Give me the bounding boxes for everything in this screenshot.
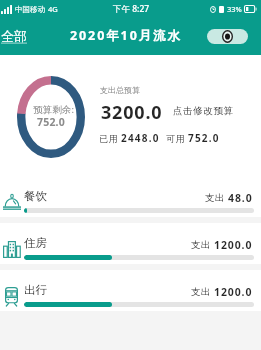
staticText: 支出 (205, 192, 225, 204)
button[interactable]: 显示金额开关 (207, 29, 248, 44)
staticText: 点击修改预算 (173, 105, 234, 117)
staticText: 支出 (191, 286, 211, 298)
staticText: 752.0 (188, 131, 220, 145)
staticText: 下午 8:27 (113, 3, 150, 15)
staticText: 2020年10月流水 (70, 27, 182, 44)
staticText: 752.0 (37, 115, 65, 129)
staticText: 出行 (24, 283, 47, 297)
staticText: 支出 (191, 239, 211, 251)
staticText: 预算剩余: (33, 103, 75, 116)
button[interactable]: 全部 (1, 28, 27, 44)
staticText: 中国移动 (15, 5, 45, 14)
staticText: 住房 (24, 236, 47, 250)
staticText: 2448.0 (121, 131, 160, 145)
staticText: 3200.0 (101, 100, 163, 125)
staticText: 48.0 (228, 191, 253, 205)
staticText: 全部 (1, 28, 27, 44)
button[interactable]: 餐饮 (0, 176, 261, 217)
button[interactable]: 点击修改预算 (173, 105, 234, 117)
staticText: 1200.0 (214, 238, 253, 252)
staticText: 1200.0 (214, 285, 253, 299)
staticText: 可用 (166, 133, 185, 144)
staticText: 4G (48, 4, 58, 14)
staticText: 餐饮 (24, 189, 47, 203)
staticText: 支出总预算 (100, 85, 140, 95)
staticText: 33% (227, 4, 242, 14)
button[interactable]: 住房 (0, 223, 261, 264)
staticText: 已用 (99, 133, 118, 144)
button[interactable]: 出行 (0, 270, 261, 311)
